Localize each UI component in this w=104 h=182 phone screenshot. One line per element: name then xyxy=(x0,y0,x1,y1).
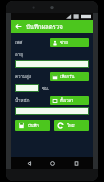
button[interactable]: เลือกวัน xyxy=(50,72,89,81)
staticText: ความสูง xyxy=(15,73,50,80)
staticText: บันทึกผลตรวจ xyxy=(26,22,63,32)
staticText: ใหม่ xyxy=(67,122,75,129)
staticText: บันทึก xyxy=(28,122,39,129)
staticText: ตั้งเวลา xyxy=(60,97,74,104)
staticText: น้ำหนัก xyxy=(15,97,50,104)
button[interactable]: ชาย xyxy=(50,38,89,47)
staticText: ซม. xyxy=(42,85,50,92)
button[interactable]: บันทึก xyxy=(15,120,50,131)
button[interactable]: Recent apps xyxy=(70,157,82,169)
staticText: อายุ xyxy=(15,51,23,58)
button[interactable]: ตั้งเวลา xyxy=(50,96,89,105)
button[interactable]: Home xyxy=(46,157,58,169)
staticText: เพศ xyxy=(15,39,50,46)
button[interactable]: ใหม่ xyxy=(54,120,89,131)
button[interactable]: Back xyxy=(23,157,35,169)
button[interactable]: Back xyxy=(13,21,24,32)
staticText: เลือกวัน xyxy=(60,73,75,80)
staticText: ชาย xyxy=(60,39,68,46)
